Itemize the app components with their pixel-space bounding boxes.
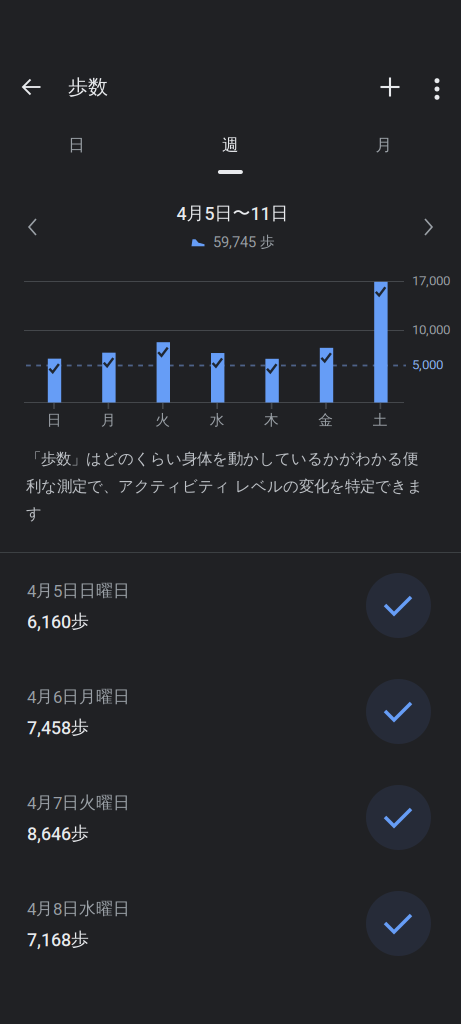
- button[interactable]: 日: [0, 114, 154, 174]
- staticText: 日: [68, 135, 85, 155]
- button[interactable]: 週: [154, 114, 307, 174]
- staticText: 土: [373, 411, 388, 429]
- staticText: 火: [155, 411, 170, 429]
- button[interactable]: 前の週: [6, 192, 62, 262]
- staticText: 週: [222, 135, 239, 155]
- staticText: 7,458歩: [27, 716, 89, 739]
- button[interactable]: 4月5日日曜日: [0, 553, 461, 659]
- staticText: 月: [375, 135, 392, 155]
- staticText: 4月5日〜11日: [176, 202, 288, 224]
- button[interactable]: 4月8日水曜日: [0, 871, 461, 977]
- button[interactable]: 追加: [364, 59, 416, 115]
- staticText: 月: [101, 411, 116, 429]
- staticText: 17,000: [412, 273, 450, 289]
- staticText: 「歩数」はどのくらい身体を動かしているかがわかる便利な測定で、アクティビティ レ…: [26, 449, 423, 523]
- staticText: 59,745 歩: [213, 232, 275, 251]
- staticText: 7,168歩: [27, 928, 89, 951]
- button[interactable]: その他のオプション: [415, 61, 459, 117]
- staticText: 5,000: [412, 357, 443, 373]
- button[interactable]: 4月6日月曜日: [0, 659, 461, 765]
- button[interactable]: 戻る: [5, 59, 57, 115]
- button[interactable]: 月: [307, 114, 461, 174]
- button[interactable]: 4月7日火曜日: [0, 765, 461, 871]
- staticText: 日: [47, 411, 62, 429]
- staticText: 4月8日水曜日: [27, 898, 130, 919]
- staticText: 10,000: [412, 322, 450, 338]
- staticText: 4月5日日曜日: [27, 580, 130, 601]
- staticText: 4月6日月曜日: [27, 686, 130, 707]
- staticText: 木: [264, 411, 279, 429]
- staticText: 歩数: [68, 74, 108, 100]
- staticText: 金: [318, 411, 333, 429]
- staticText: 4月7日火曜日: [27, 792, 130, 813]
- staticText: 6,160歩: [27, 610, 89, 633]
- button[interactable]: 次の週: [399, 192, 455, 262]
- staticText: 8,646歩: [27, 822, 89, 845]
- staticText: 水: [210, 411, 225, 429]
